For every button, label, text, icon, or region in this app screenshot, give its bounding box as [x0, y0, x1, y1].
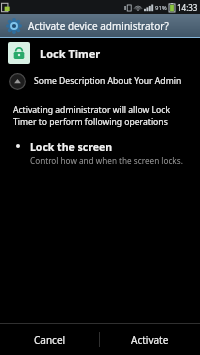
- button[interactable]: Activate: [100, 324, 200, 355]
- staticText: 91%: [155, 4, 167, 12]
- other: Expand admin description: [9, 73, 26, 90]
- staticText: Activate: [131, 333, 169, 347]
- staticText: 14:33: [177, 2, 198, 13]
- staticText: Activate device administrator?: [28, 19, 169, 33]
- staticText: Cancel: [34, 333, 66, 347]
- staticText: Activating administrator will allow Lock…: [13, 104, 186, 128]
- button[interactable]: Expand admin description: [0, 68, 200, 94]
- staticText: Some Description About Your Admin: [34, 75, 182, 87]
- button[interactable]: Cancel: [0, 324, 99, 355]
- button[interactable]: Lock Timer: [0, 38, 200, 68]
- staticText: Control how and when the screen locks.: [30, 155, 183, 166]
- staticText: Lock the screen: [30, 140, 113, 154]
- staticText: Lock Timer: [40, 46, 101, 61]
